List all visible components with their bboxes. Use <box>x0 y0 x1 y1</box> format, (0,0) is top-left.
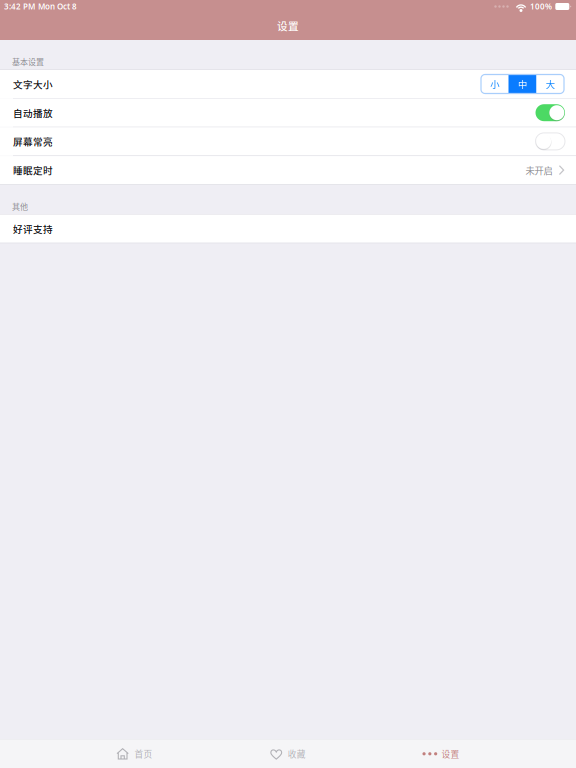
staticText: 收藏 <box>288 747 306 760</box>
button[interactable]: 文字大小 <box>0 70 576 98</box>
button[interactable]: 中 <box>508 74 536 93</box>
staticText: 设置 <box>277 18 299 33</box>
button[interactable]: 好评支持 <box>0 215 576 243</box>
staticText: 未开启 <box>525 163 552 177</box>
staticText: 其他 <box>12 200 28 212</box>
staticText: 自动播放 <box>13 106 53 120</box>
staticText: 大 <box>546 77 555 91</box>
button[interactable]: 自动播放 <box>0 99 576 127</box>
staticText: 小 <box>490 77 499 91</box>
staticText: Mon Oct 8 <box>38 1 77 12</box>
staticText: 100% <box>530 1 552 12</box>
button[interactable]: 睡眠定时 <box>0 156 576 184</box>
staticText: 好评支持 <box>13 222 53 236</box>
button[interactable]: 首页 <box>58 739 211 768</box>
staticText: 睡眠定时 <box>13 163 53 177</box>
button[interactable]: 设置 <box>365 739 518 768</box>
staticText: 中 <box>518 77 527 91</box>
button[interactable]: 大 <box>536 74 564 93</box>
staticText: 基本设置 <box>12 56 44 67</box>
button[interactable]: 小 <box>481 74 508 93</box>
staticText: 设置 <box>441 747 459 760</box>
staticText: 3:42 PM <box>4 1 35 12</box>
staticText: 文字大小 <box>13 77 53 91</box>
button[interactable] <box>535 104 565 121</box>
staticText: 屏幕常亮 <box>13 134 53 148</box>
button[interactable]: 收藏 <box>211 739 365 768</box>
staticText: 首页 <box>134 747 152 760</box>
button[interactable]: 屏幕常亮 <box>0 127 576 155</box>
button[interactable] <box>535 133 565 150</box>
